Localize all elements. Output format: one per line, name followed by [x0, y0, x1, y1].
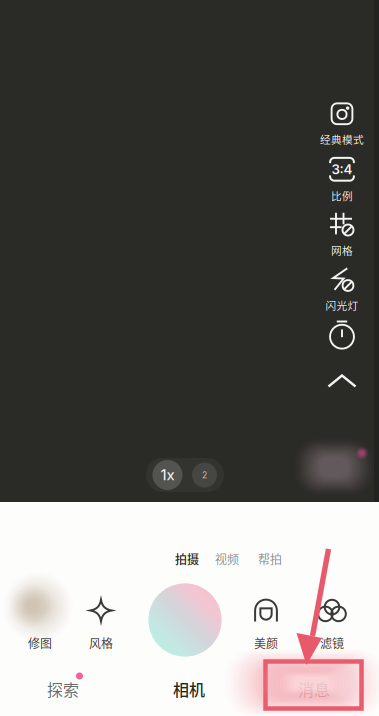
- button[interactable]: 滤镜: [299, 599, 365, 649]
- staticText: 视频: [215, 550, 239, 568]
- button[interactable]: 探索: [0, 662, 126, 716]
- button[interactable]: 比例: [309, 157, 375, 203]
- staticText: 探索: [47, 677, 79, 701]
- staticText: 1x: [160, 466, 174, 484]
- button[interactable]: 拍摄: [167, 546, 207, 572]
- button[interactable]: 视频: [207, 546, 247, 572]
- staticText: 风格: [89, 634, 113, 652]
- button[interactable]: 修图: [7, 599, 73, 649]
- button[interactable]: Camera control: [309, 358, 375, 404]
- staticText: 拍摄: [175, 550, 199, 568]
- button[interactable]: 1x: [152, 460, 182, 490]
- button[interactable]: 经典模式: [309, 101, 375, 147]
- button[interactable]: 闪光灯: [309, 267, 375, 313]
- staticText: 网格: [331, 242, 353, 258]
- button[interactable]: Camera control: [309, 311, 375, 357]
- staticText: 比例: [331, 188, 353, 203]
- staticText: 修图: [28, 634, 52, 652]
- button[interactable]: 消息: [251, 662, 377, 716]
- staticText: 相机: [173, 677, 205, 701]
- button[interactable]: 帮拍: [250, 546, 290, 572]
- button[interactable]: 网格: [309, 212, 375, 258]
- staticText: 2: [202, 470, 207, 480]
- staticText: 经典模式: [320, 131, 364, 147]
- button[interactable]: 美颜: [233, 599, 299, 649]
- button[interactable]: Shutter: [148, 583, 221, 656]
- staticText: 闪光灯: [325, 297, 358, 313]
- button[interactable]: 相机: [126, 662, 252, 716]
- staticText: 消息: [298, 677, 330, 701]
- staticText: 3:4: [331, 161, 352, 177]
- staticText: 美颜: [254, 634, 278, 652]
- button[interactable]: 风格: [68, 599, 134, 649]
- staticText: 帮拍: [258, 550, 282, 568]
- button[interactable]: 2: [192, 462, 217, 487]
- staticText: 滤镜: [320, 634, 344, 652]
